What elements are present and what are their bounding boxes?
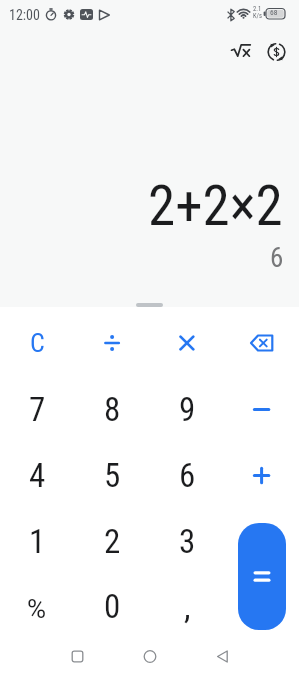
staticText: 0 (104, 587, 121, 626)
staticText: 9 (179, 390, 196, 429)
button[interactable] (226, 378, 298, 440)
staticText: 6 (270, 242, 284, 274)
staticText: 6 (179, 456, 196, 495)
button[interactable] (201, 641, 243, 673)
staticText: 4 (29, 456, 46, 495)
staticText: 5 (104, 456, 121, 495)
button[interactable]: 1 (1, 510, 73, 572)
button[interactable]: 2 (76, 510, 148, 572)
staticText: 12:00 (9, 7, 40, 23)
staticText: 3 (179, 522, 196, 561)
button[interactable]: % (1, 578, 73, 640)
button[interactable]: 4 (1, 444, 73, 506)
button[interactable]: 8 (76, 378, 148, 440)
staticText: % (27, 594, 47, 624)
button[interactable]: 9 (151, 378, 223, 440)
button[interactable]: , (151, 576, 223, 638)
staticText: 2 (104, 522, 121, 561)
button[interactable] (57, 641, 99, 673)
button[interactable]: 5 (76, 444, 148, 506)
button[interactable]: 7 (1, 378, 73, 440)
staticText: 7 (29, 390, 46, 429)
button[interactable]: C (1, 312, 73, 374)
staticText: 2+2×2 (148, 174, 283, 238)
button[interactable] (151, 312, 223, 374)
button[interactable] (262, 38, 290, 64)
staticText: 1 (29, 522, 46, 561)
button[interactable] (76, 312, 148, 374)
staticText: , (184, 588, 191, 627)
staticText: 68 (270, 8, 278, 17)
staticText: C (30, 328, 45, 358)
button[interactable] (226, 312, 298, 374)
button[interactable]: 3 (151, 510, 223, 572)
button[interactable] (226, 38, 254, 64)
staticText: 8 (104, 390, 121, 429)
button[interactable] (129, 641, 171, 673)
button[interactable]: 6 (151, 444, 223, 506)
button[interactable]: 0 (76, 575, 148, 637)
staticText: K/s (253, 12, 262, 20)
button[interactable] (226, 444, 298, 506)
button[interactable] (238, 523, 286, 630)
staticText: 2.1 (253, 5, 262, 13)
